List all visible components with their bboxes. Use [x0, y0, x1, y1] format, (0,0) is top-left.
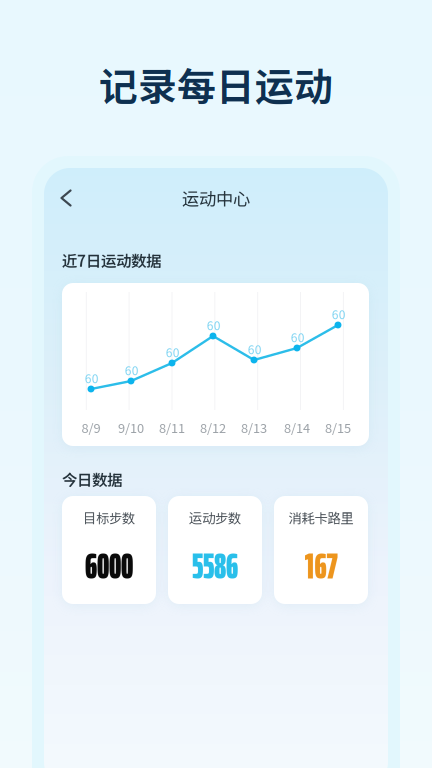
staticText: 5586 — [192, 536, 238, 595]
staticText: 6000 — [85, 536, 133, 595]
staticText: 运动步数 — [189, 508, 241, 527]
staticText: 今日数据 — [62, 468, 122, 490]
staticText: 9/10 — [118, 418, 144, 437]
staticText: 60 — [248, 340, 262, 358]
staticText: 60 — [291, 328, 305, 346]
staticText: 8/12 — [200, 418, 226, 437]
staticText: 60 — [85, 369, 99, 387]
staticText: 8/13 — [241, 418, 267, 437]
staticText: 8/9 — [81, 418, 100, 437]
staticText: 运动中心 — [182, 185, 250, 211]
staticText: 60 — [166, 343, 180, 361]
button[interactable]: Back — [48, 180, 84, 216]
staticText: 8/11 — [159, 418, 185, 437]
staticText: 60 — [125, 361, 139, 379]
staticText: 消耗卡路里 — [288, 508, 353, 527]
staticText: 记录每日运动 — [99, 56, 333, 112]
staticText: 8/15 — [325, 418, 351, 437]
staticText: 167 — [304, 536, 337, 595]
staticText: 目标步数 — [83, 508, 135, 527]
staticText: 8/14 — [284, 418, 310, 437]
staticText: 60 — [332, 305, 346, 323]
staticText: 60 — [207, 316, 221, 334]
staticText: 近7日运动数据 — [62, 249, 161, 271]
